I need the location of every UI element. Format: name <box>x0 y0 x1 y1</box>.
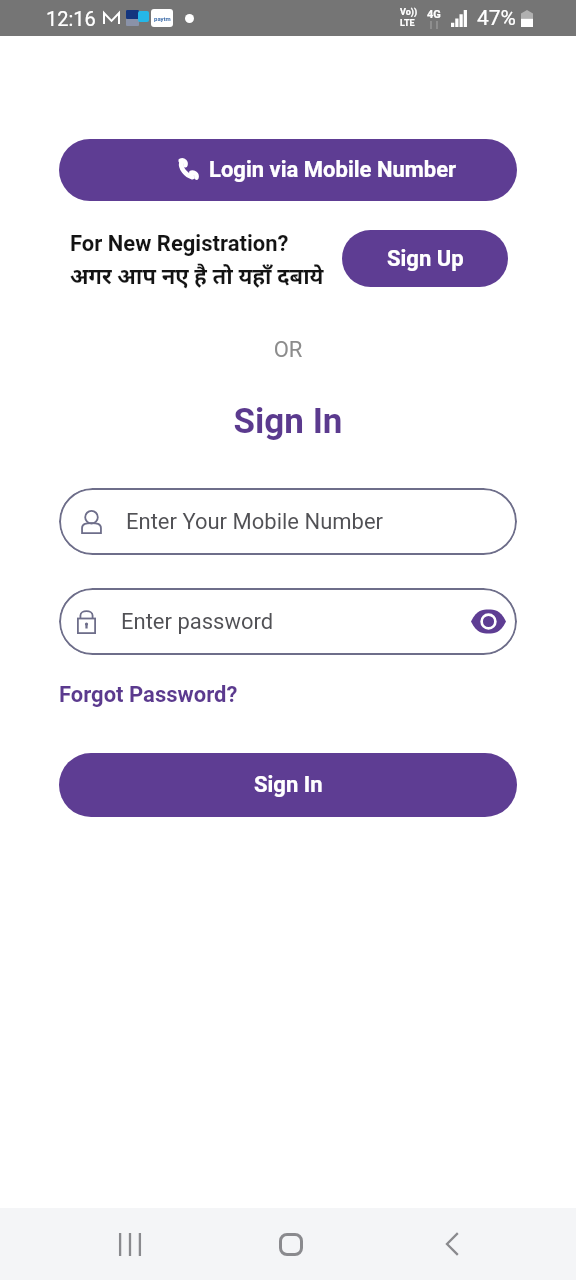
button[interactable]: Enter password <box>59 588 517 655</box>
staticText: Sign In <box>0 401 576 442</box>
staticText: Vo)) <box>400 7 418 18</box>
staticText: Forgot Password? <box>59 682 238 708</box>
button[interactable]: Recents <box>90 1208 170 1280</box>
staticText: Login via Mobile Number <box>209 157 457 183</box>
button[interactable]: Forgot Password? <box>59 682 238 708</box>
staticText: paytm <box>154 15 171 22</box>
button[interactable]: Show password <box>471 610 506 633</box>
button[interactable]: Sign In <box>59 753 517 817</box>
staticText: Sign In <box>254 772 323 798</box>
staticText: Enter password <box>121 609 274 635</box>
button[interactable]: Sign Up <box>342 230 508 287</box>
staticText: अगर आप नए है तो यहाँ दबाये <box>70 260 324 290</box>
staticText: 12:16 <box>46 7 96 30</box>
staticText: LTE <box>400 18 415 29</box>
button[interactable]: Enter Your Mobile Number <box>59 488 517 555</box>
staticText: 4G <box>427 8 441 21</box>
staticText: OR <box>0 337 576 363</box>
button[interactable]: Back <box>412 1208 492 1280</box>
button[interactable]: Login via Mobile Number <box>59 139 517 201</box>
staticText: Sign Up <box>387 246 464 272</box>
staticText: Enter Your Mobile Number <box>126 509 384 535</box>
staticText: 47% <box>477 6 516 31</box>
button[interactable]: Home <box>251 1208 331 1280</box>
staticText: For New Registration? <box>70 231 289 257</box>
